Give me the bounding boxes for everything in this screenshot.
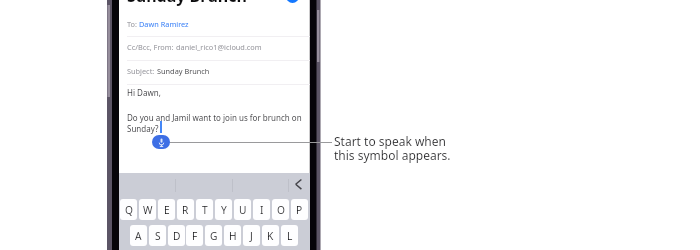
staticText: E	[164, 203, 170, 217]
staticText: Sunday Brunch	[157, 66, 210, 76]
button[interactable]: Y	[215, 199, 232, 220]
button[interactable]: Dictate	[152, 135, 170, 149]
staticText: Hi Dawn,	[127, 87, 161, 98]
button[interactable]: H	[224, 225, 241, 246]
button[interactable]: O	[272, 199, 289, 220]
staticText: A	[135, 229, 142, 243]
button[interactable]: J	[243, 225, 260, 246]
staticText: H	[229, 229, 237, 243]
staticText: L	[287, 229, 293, 243]
staticText: G	[210, 229, 218, 243]
button[interactable]: Send	[286, 0, 299, 3]
staticText: Q	[125, 203, 133, 217]
staticText: D	[173, 229, 181, 243]
button[interactable]: A	[130, 225, 147, 246]
staticText: Do you and Jamil want to join us for bru…	[127, 112, 302, 134]
button[interactable]: U	[234, 199, 251, 220]
button[interactable]: F	[186, 225, 203, 246]
button[interactable]: K	[262, 225, 279, 246]
staticText: To:	[127, 19, 137, 29]
staticText: Start to speak when this symbol appears.	[334, 133, 451, 164]
staticText: Subject:	[127, 66, 155, 76]
button[interactable]: L	[281, 225, 298, 246]
button[interactable]: P	[291, 199, 308, 220]
button[interactable]: I	[253, 199, 270, 220]
staticText: P	[296, 203, 303, 217]
button[interactable]: Q	[120, 199, 137, 220]
staticText: S	[155, 229, 161, 243]
button[interactable]: T	[196, 199, 213, 220]
button[interactable]: D	[168, 225, 185, 246]
button[interactable]: G	[205, 225, 222, 246]
staticText: daniel_rico1@icloud.com	[176, 42, 262, 52]
staticText: K	[267, 229, 274, 243]
button[interactable]: Hide suggestions	[292, 176, 306, 190]
staticText: I	[260, 203, 264, 217]
staticText: U	[239, 203, 247, 217]
staticText: W	[143, 203, 153, 217]
staticText: J	[250, 229, 253, 243]
staticText: Dawn Ramirez	[139, 19, 189, 29]
staticText: Cc/Bcc, From:	[127, 42, 174, 52]
staticText: Sunday Brunch	[127, 0, 247, 7]
staticText: R	[182, 203, 189, 217]
staticText: Y	[221, 203, 227, 217]
button[interactable]: S	[149, 225, 166, 246]
staticText: T	[202, 203, 208, 217]
button[interactable]: E	[158, 199, 175, 220]
button[interactable]: W	[139, 199, 156, 220]
staticText: F	[192, 229, 198, 243]
button[interactable]: R	[177, 199, 194, 220]
staticText: O	[277, 203, 285, 217]
